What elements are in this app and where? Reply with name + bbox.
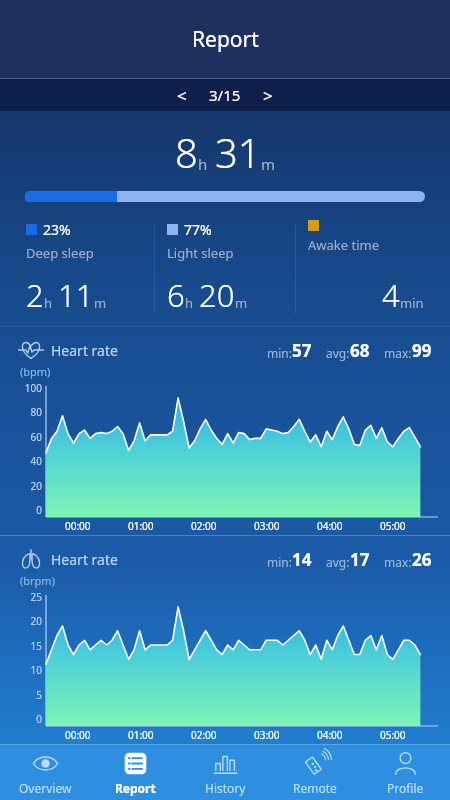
staticText: 17 [350,548,370,571]
staticText: 4 [382,274,400,316]
staticText: Light sleep [167,244,234,262]
staticText: 6 [167,274,185,316]
staticText: (bpm) [20,364,51,379]
staticText: 60 [30,430,42,444]
staticText: 02:00 [191,728,217,742]
staticText: 02:00 [191,519,217,533]
staticText: 10 [30,663,42,677]
button[interactable]: History [180,745,270,800]
staticText: Report [115,780,156,796]
staticText: Deep sleep [26,244,94,262]
staticText: 01:00 [128,519,154,533]
staticText: 20 [30,479,42,493]
staticText: 57 [292,339,312,362]
button[interactable]: > [241,79,450,111]
staticText: Heart rate [51,341,118,360]
staticText: Remote [293,780,337,796]
staticText: 68 [350,339,370,362]
staticText: 04:00 [317,519,343,533]
button[interactable]: Profile [360,745,450,800]
staticText: avg: [326,554,350,570]
staticText: > [263,84,273,107]
staticText: 00:00 [65,728,91,742]
staticText: Awake time [308,236,380,254]
staticText: 04:00 [317,728,343,742]
staticText: min: [267,345,292,361]
staticText: 99 [412,339,432,362]
button[interactable]: Report [90,745,180,800]
staticText: 40 [30,454,42,468]
staticText: < [177,84,187,107]
staticText: 26 [412,548,432,571]
staticText: avg: [326,345,350,361]
staticText: 31 [215,125,261,179]
staticText: 03:00 [254,519,280,533]
staticText: max: [384,345,412,361]
staticText: 05:00 [380,519,406,533]
staticText: 5 [36,688,42,702]
staticText: h [185,294,194,312]
staticText: Report [192,25,259,54]
staticText: (brpm) [20,573,55,588]
staticText: 25 [30,590,42,604]
staticText: m [235,294,248,312]
staticText: 05:00 [380,728,406,742]
staticText: 100 [24,381,42,395]
staticText: min [400,294,424,312]
staticText: 01:00 [128,728,154,742]
staticText: min: [267,554,292,570]
staticText: m [261,154,276,174]
staticText: 14 [292,548,312,571]
staticText: Profile [387,780,424,796]
staticText: h [198,154,208,174]
staticText: Heart rate [51,550,118,569]
staticText: 23% [43,220,71,239]
staticText: 8 [175,125,198,179]
button[interactable]: Overview [0,745,90,800]
staticText: m [94,294,107,312]
staticText: 0 [36,503,42,517]
staticText: 11 [58,274,94,316]
staticText: 80 [30,405,42,419]
staticText: History [205,780,246,796]
staticText: 2 [26,274,44,316]
staticText: max: [384,554,412,570]
staticText: Overview [19,780,72,796]
staticText: 20 [199,274,235,316]
staticText: 0 [36,712,42,726]
staticText: 20 [30,614,42,628]
button[interactable]: < [0,79,209,111]
staticText: h [44,294,53,312]
button[interactable]: Remote [270,745,360,800]
staticText: 03:00 [254,728,280,742]
staticText: 00:00 [65,519,91,533]
staticText: 3/15 [209,85,241,105]
staticText: 15 [30,639,42,653]
staticText: 77% [184,220,212,239]
